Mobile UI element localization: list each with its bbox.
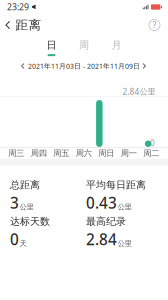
staticText: 总距离	[10, 179, 40, 191]
staticText: 3	[10, 192, 19, 213]
staticText: 月	[111, 39, 121, 52]
staticText: 周	[79, 39, 89, 52]
staticText: 0.43	[86, 192, 117, 213]
staticText: 周日	[98, 148, 114, 158]
staticText: 周四	[31, 148, 47, 158]
button[interactable]: Previous week	[20, 60, 27, 72]
button[interactable]: Help	[141, 14, 168, 36]
staticText: 周六	[76, 148, 92, 158]
staticText: 公里	[117, 202, 131, 212]
staticText: 周二	[143, 148, 159, 158]
staticText: 周一	[121, 148, 137, 158]
button[interactable]: 周	[76, 39, 92, 56]
staticText: 天	[19, 239, 26, 248]
staticText: 周五	[53, 148, 69, 158]
staticText: 公里	[117, 239, 131, 248]
staticText: 公里	[19, 202, 33, 212]
staticText: 0	[10, 229, 19, 250]
staticText: 周三	[8, 148, 24, 158]
staticText: 2021年11月03日 - 2021年11月09日	[28, 61, 140, 71]
staticText: 0	[150, 137, 155, 149]
staticText: 23:29	[7, 1, 29, 13]
button[interactable]: Back	[0, 14, 16, 36]
button[interactable]: 月	[108, 39, 124, 56]
staticText: 距离	[16, 17, 42, 33]
staticText: ?	[152, 19, 156, 31]
staticText: 平均每日距离	[86, 179, 146, 191]
staticText: 2.84	[86, 229, 117, 250]
staticText: 最高纪录	[86, 215, 126, 228]
button[interactable]: 日	[43, 39, 59, 56]
staticText: 2.84公里	[122, 86, 155, 97]
staticText: 达标天数	[10, 215, 50, 228]
staticText: 日	[46, 39, 56, 52]
button[interactable]: Next week	[141, 60, 148, 72]
